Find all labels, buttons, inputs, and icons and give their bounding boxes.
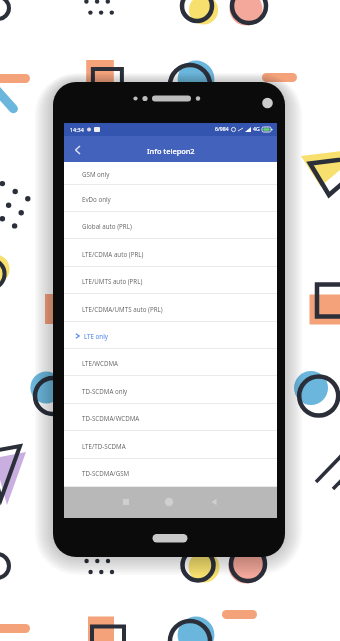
staticText: LTE/UMTS auto (PRL) [82,277,143,285]
button[interactable]: LTE/TD-SCDMA [64,432,277,459]
button[interactable]: TD-SCDMA only [64,377,277,404]
button[interactable]: Global auto (PRL) [64,212,277,239]
staticText: TD-SCDMA/WCDMA [82,414,140,422]
button[interactable]: LTE only [64,322,277,349]
button[interactable]: LTE/CDMA auto (PRL) [64,240,277,267]
staticText: TD-SCDMA/GSM [82,469,130,477]
staticText: EvDo only [82,195,111,203]
button[interactable]: GSM only [64,162,277,185]
staticText: LTE/TD-SCDMA [82,442,126,450]
button[interactable]: LTE/UMTS auto (PRL) [64,267,277,294]
staticText: LTE/CDMA auto (PRL) [82,250,144,258]
staticText: 4G [253,126,260,133]
button[interactable]: Back [210,498,218,506]
staticText: LTE only [84,332,108,340]
button[interactable]: TD-SCDMA/GSM [64,459,277,487]
staticText: 14:34 [70,126,84,133]
staticText: Global auto (PRL) [82,222,132,230]
staticText: LTE/CDMA/UMTS auto (PRL) [82,305,163,313]
staticText: Info telepon2 [147,146,195,156]
button[interactable]: Recents [122,498,130,506]
button[interactable]: LTE/WCDMA [64,349,277,376]
button[interactable]: Back [70,142,86,158]
staticText: GSM only [82,170,110,178]
staticText: LTE/WCDMA [82,359,118,367]
staticText: TD-SCDMA only [82,387,128,395]
button[interactable]: TD-SCDMA/WCDMA [64,404,277,431]
staticText: 6/984 [215,126,229,133]
button[interactable]: LTE/CDMA/UMTS auto (PRL) [64,295,277,322]
button[interactable]: EvDo only [64,185,277,212]
button[interactable]: Home [164,497,174,507]
